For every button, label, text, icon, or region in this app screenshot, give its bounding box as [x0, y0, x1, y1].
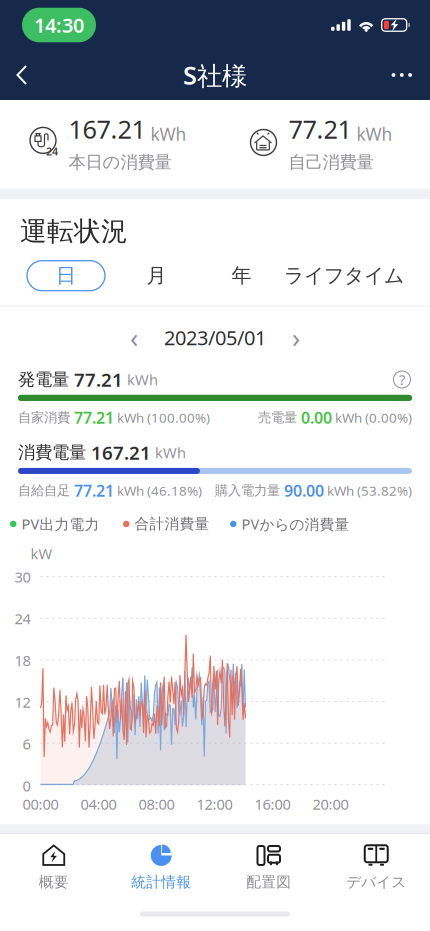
staticText: kWh	[151, 443, 186, 462]
button[interactable]: 概要	[0, 834, 107, 897]
staticText: 08:00	[138, 794, 174, 814]
staticText: 20:00	[312, 794, 348, 814]
staticText: 自家消費	[18, 409, 70, 426]
staticText: 6	[22, 734, 30, 754]
staticText: 概要	[39, 873, 69, 891]
staticText: 本日の消費量	[68, 152, 171, 173]
staticText: 発電量	[18, 369, 69, 390]
staticText: 運転状況	[20, 215, 128, 248]
staticText: ‹	[130, 320, 138, 355]
staticText: ?	[399, 370, 405, 389]
staticText: 12:00	[196, 794, 232, 814]
button[interactable]: ライフタイム	[284, 256, 404, 296]
staticText: kWh (100.00%)	[114, 409, 210, 426]
button[interactable]: 月	[114, 256, 199, 296]
staticText: S社様	[183, 58, 247, 92]
button[interactable]: Help	[392, 369, 412, 389]
button[interactable]: 配置図	[215, 834, 322, 897]
staticText: 30	[14, 567, 30, 586]
button[interactable]: デバイス	[322, 834, 430, 897]
staticText: 14:30	[34, 12, 84, 38]
staticText: 167.21	[86, 440, 151, 465]
staticText: 90.00	[280, 480, 324, 501]
staticText: 消費電量	[18, 442, 86, 463]
staticText: ›	[292, 320, 300, 355]
staticText: PV出力電力	[21, 514, 99, 534]
staticText: 2023/05/01	[164, 324, 266, 351]
staticText: 合計消費量	[134, 515, 209, 533]
staticText: PVからの消費量	[241, 514, 349, 534]
staticText: 24	[14, 609, 30, 628]
staticText: 77.21	[69, 367, 123, 392]
staticText: ライフタイム	[284, 263, 404, 288]
staticText: 売電量	[258, 409, 297, 426]
button[interactable]: 統計情報	[107, 834, 215, 897]
button[interactable]: Next day	[282, 316, 310, 359]
staticText: kWh	[123, 370, 158, 389]
button[interactable]: More options	[374, 53, 430, 97]
staticText: 統計情報	[131, 873, 191, 891]
staticText: 24	[46, 144, 58, 159]
staticText: 18	[14, 651, 30, 670]
staticText: デバイス	[346, 873, 406, 891]
staticText: kWh (46.18%)	[114, 482, 202, 499]
staticText: 167.21	[68, 112, 145, 146]
staticText: 16:00	[254, 794, 290, 814]
staticText: 77.21	[288, 112, 351, 146]
button[interactable]: Back	[0, 51, 44, 99]
button[interactable]: 年	[199, 256, 284, 296]
staticText: 12	[14, 692, 30, 712]
staticText: kWh (0.00%)	[332, 409, 412, 426]
staticText: 77.21	[70, 480, 114, 501]
staticText: 77.21	[70, 407, 114, 428]
staticText: 自給自足	[18, 482, 70, 499]
staticText: kWh	[150, 123, 186, 146]
staticText: 04:00	[80, 794, 116, 814]
staticText: kW	[30, 544, 52, 563]
staticText: 0.00	[297, 407, 332, 428]
staticText: 自己消費量	[288, 152, 373, 173]
button[interactable]: 日	[18, 256, 114, 296]
staticText: 0	[22, 776, 30, 795]
staticText: kWh	[356, 123, 392, 146]
staticText: kWh (53.82%)	[324, 482, 412, 499]
button[interactable]: Previous day	[120, 316, 148, 359]
staticText: 年	[231, 263, 251, 288]
staticText: 00:00	[22, 794, 58, 814]
staticText: 日	[56, 263, 76, 288]
staticText: 購入電力量	[215, 482, 280, 499]
staticText: 月	[146, 263, 166, 288]
staticText: 配置図	[246, 873, 291, 891]
